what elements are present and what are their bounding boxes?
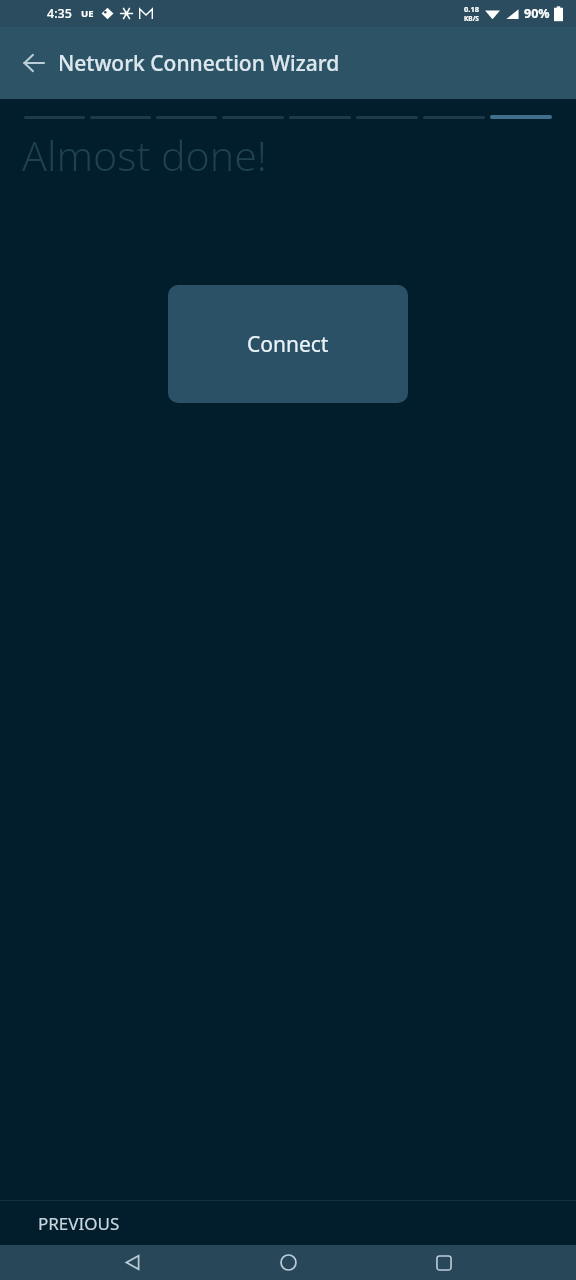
button[interactable]: Connect — [168, 285, 408, 403]
staticText: PREVIOUS — [38, 1212, 120, 1235]
button[interactable]: Back — [10, 39, 58, 87]
staticText: KB/S — [464, 14, 479, 23]
staticText: Connect — [247, 330, 329, 359]
staticText: 0.18 — [464, 4, 479, 14]
staticText: Almost done! — [22, 127, 267, 183]
staticText: Network Connection Wizard — [58, 49, 340, 78]
button[interactable]: Recent apps — [420, 1245, 468, 1280]
staticText: UE — [81, 7, 94, 20]
button[interactable]: PREVIOUS — [26, 1204, 132, 1243]
staticText: 4:35 — [47, 5, 72, 22]
button[interactable]: Home — [264, 1245, 312, 1280]
staticText: 90% — [524, 5, 550, 22]
button[interactable]: Back — [108, 1245, 156, 1280]
